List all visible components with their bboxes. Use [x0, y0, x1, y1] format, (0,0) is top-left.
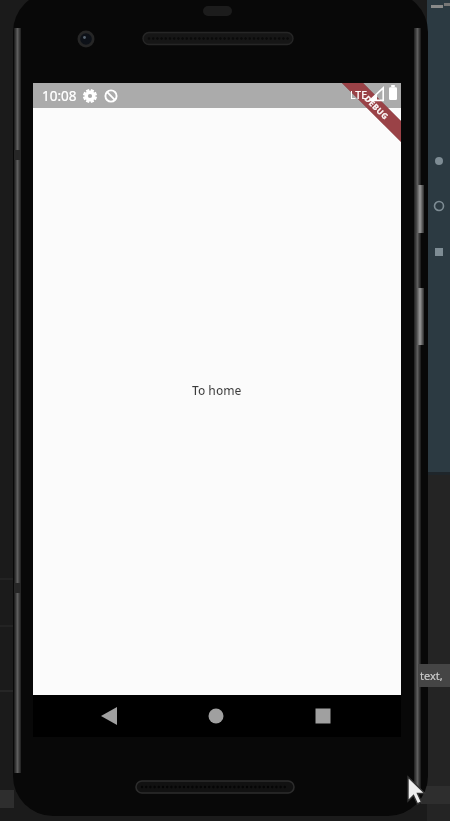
- button[interactable]: [295, 695, 351, 737]
- staticText: LTE: [350, 88, 367, 102]
- button[interactable]: [81, 695, 137, 737]
- staticText: text,: [420, 668, 443, 683]
- staticText: DEBUG: [362, 93, 391, 122]
- button[interactable]: [188, 695, 244, 737]
- staticText: 10:08: [42, 87, 77, 105]
- staticText: To home: [192, 382, 242, 398]
- button[interactable]: To home: [33, 381, 401, 398]
